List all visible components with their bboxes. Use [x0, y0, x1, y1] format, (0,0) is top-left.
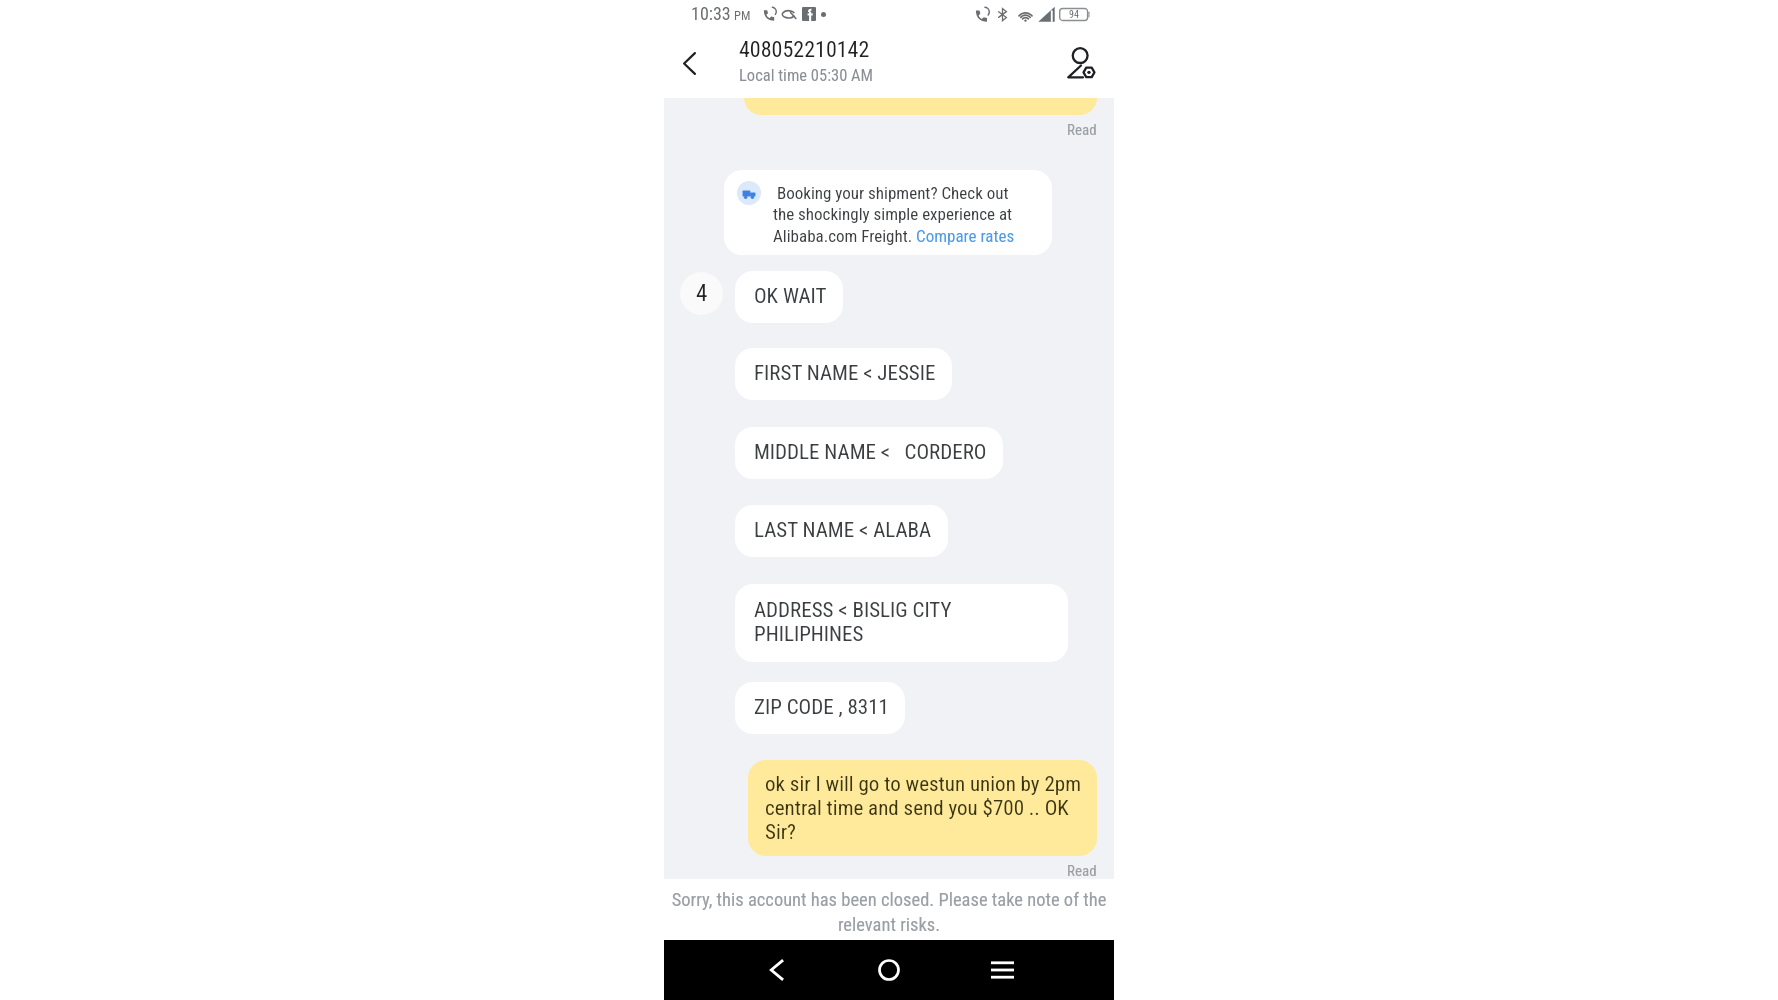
staticText: ZIP CODE , 8311	[754, 695, 889, 720]
staticText: Read	[1067, 862, 1097, 880]
button[interactable]: Home	[826, 940, 951, 1000]
button[interactable]: OK WAIT	[735, 271, 843, 323]
staticText: 94	[1069, 9, 1079, 21]
button[interactable]: Back	[664, 28, 739, 98]
button[interactable]: ZIP CODE , 8311	[735, 682, 905, 734]
staticText: ADDRESS < BISLIG CITY PHILIPHINES	[754, 598, 1054, 646]
button[interactable]: Back	[727, 940, 826, 1000]
button[interactable]: Recent apps	[951, 940, 1053, 1000]
staticText: Booking your shipment? Check out the sho…	[773, 183, 1016, 247]
staticText: 10:33	[691, 3, 731, 24]
staticText: LAST NAME < ALABA	[754, 518, 932, 543]
staticText: MIDDLE NAME < CORDERO	[754, 440, 987, 465]
button[interactable]: LAST NAME < ALABA	[735, 505, 948, 557]
staticText: Sorry, this account has been closed. Ple…	[669, 889, 1109, 935]
staticText: PM	[734, 8, 751, 23]
button[interactable]	[744, 98, 1097, 115]
button[interactable]: ok sir I will go to westun union by 2pm …	[748, 760, 1097, 856]
button[interactable]: Booking your shipment? Check out the sho…	[724, 170, 1052, 255]
staticText: Local time 05:30 AM	[739, 66, 874, 85]
button[interactable]: FIRST NAME < JESSIE	[735, 348, 952, 400]
staticText: FIRST NAME < JESSIE	[754, 361, 936, 386]
button[interactable]: Contact details	[1058, 28, 1114, 98]
staticText: 408052210142	[739, 37, 870, 63]
staticText: Read	[1067, 121, 1097, 139]
button[interactable]: ADDRESS < BISLIG CITY PHILIPHINES	[735, 584, 1068, 662]
staticText: 4	[696, 280, 708, 307]
button[interactable]: MIDDLE NAME < CORDERO	[735, 427, 1003, 479]
staticText: ok sir I will go to westun union by 2pm …	[765, 772, 1083, 844]
staticText: OK WAIT	[754, 284, 827, 309]
